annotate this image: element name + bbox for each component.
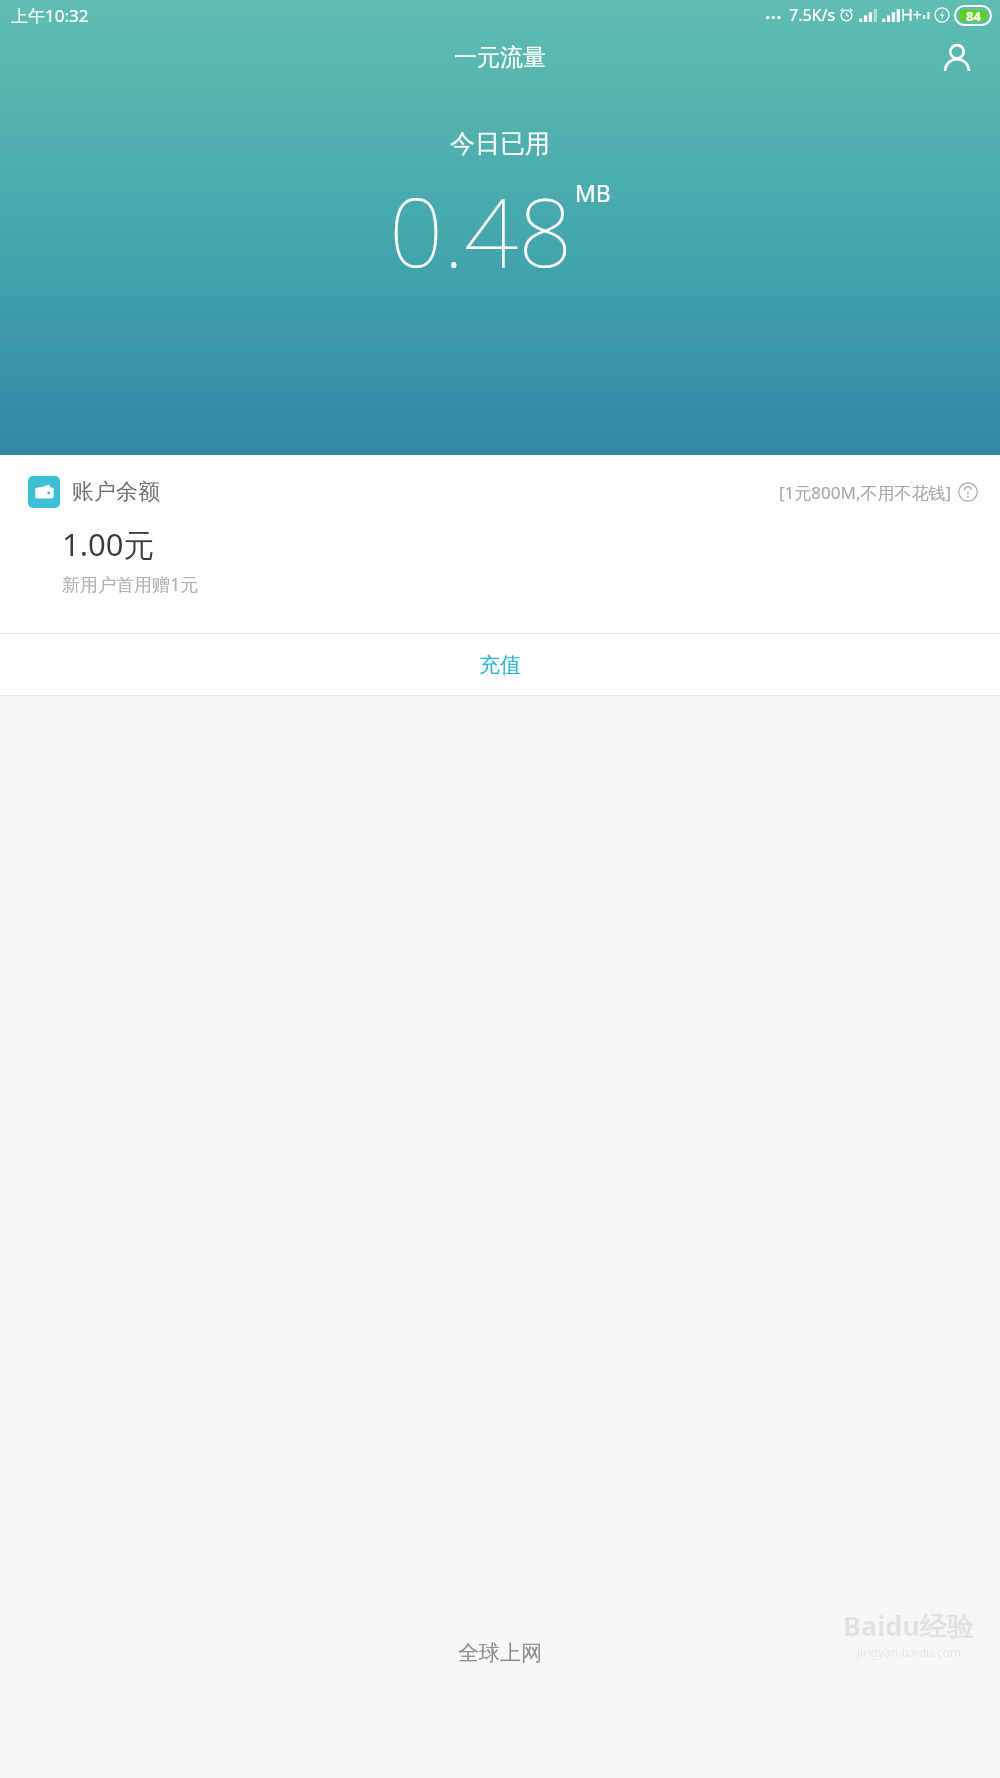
staticText: H+ — [901, 4, 923, 26]
button[interactable]: Help — [958, 482, 978, 502]
staticText: jingyan.baidu.com — [857, 1644, 961, 1660]
staticText: MB — [575, 177, 611, 208]
staticText: 7.5K/s — [789, 4, 836, 26]
button[interactable]: 充值 — [0, 634, 1000, 695]
staticText: 1.00元 — [62, 523, 155, 565]
button[interactable]: 全球上网 — [458, 1640, 542, 1666]
staticText: 上午10:32 — [11, 4, 89, 27]
staticText: Baidu经验 — [843, 1607, 974, 1644]
staticText: [1元800M,不用不花钱] — [779, 481, 952, 504]
staticText: 充值 — [479, 652, 521, 678]
staticText: 84 — [966, 7, 981, 25]
button[interactable]: Account — [934, 35, 980, 81]
staticText: 0.48 — [389, 165, 573, 294]
staticText: 今日已用 — [450, 128, 550, 159]
staticText: 一元流量 — [454, 43, 546, 72]
staticText: 新用户首用赠1元 — [62, 572, 199, 597]
staticText: 账户余额 — [72, 478, 160, 506]
